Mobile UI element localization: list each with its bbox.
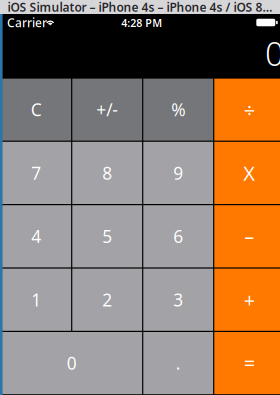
- button[interactable]: .: [143, 332, 213, 394]
- staticText: 3: [173, 288, 183, 311]
- staticText: iOS Simulator – iPhone 4s – iPhone 4s / …: [7, 0, 272, 15]
- staticText: 2: [102, 288, 112, 311]
- staticText: 5: [102, 225, 112, 248]
- staticText: 4: [31, 225, 41, 248]
- button[interactable]: %: [143, 78, 213, 141]
- staticText: Carrier: [7, 14, 47, 30]
- staticText: X: [243, 160, 255, 186]
- button[interactable]: 0: [1, 332, 142, 394]
- staticText: =: [244, 350, 255, 376]
- staticText: +: [244, 286, 255, 313]
- button[interactable]: –: [214, 205, 280, 267]
- button[interactable]: 7: [1, 142, 71, 204]
- staticText: .: [176, 352, 181, 375]
- button[interactable]: 3: [143, 269, 213, 331]
- staticText: 7: [31, 161, 41, 184]
- button[interactable]: +/-: [72, 78, 142, 141]
- button[interactable]: 4: [1, 205, 71, 267]
- button[interactable]: 5: [72, 205, 142, 267]
- staticText: +/-: [96, 98, 118, 121]
- staticText: 0: [67, 352, 77, 375]
- button[interactable]: 2: [72, 269, 142, 331]
- button[interactable]: 1: [1, 269, 71, 331]
- staticText: 8: [102, 161, 112, 184]
- button[interactable]: 8: [72, 142, 142, 204]
- button[interactable]: X: [214, 142, 280, 204]
- button[interactable]: ÷: [214, 78, 280, 141]
- staticText: 1: [31, 288, 41, 311]
- staticText: 4:28 PM: [121, 16, 162, 30]
- staticText: 9: [173, 161, 183, 184]
- staticText: 0: [265, 31, 280, 75]
- button[interactable]: 9: [143, 142, 213, 204]
- staticText: C: [31, 98, 42, 121]
- button[interactable]: 6: [143, 205, 213, 267]
- button[interactable]: =: [214, 332, 280, 394]
- staticText: %: [171, 98, 185, 121]
- button[interactable]: C: [1, 78, 71, 141]
- staticText: 6: [173, 225, 183, 248]
- button[interactable]: +: [214, 269, 280, 331]
- staticText: –: [244, 223, 254, 250]
- staticText: ÷: [244, 96, 255, 123]
